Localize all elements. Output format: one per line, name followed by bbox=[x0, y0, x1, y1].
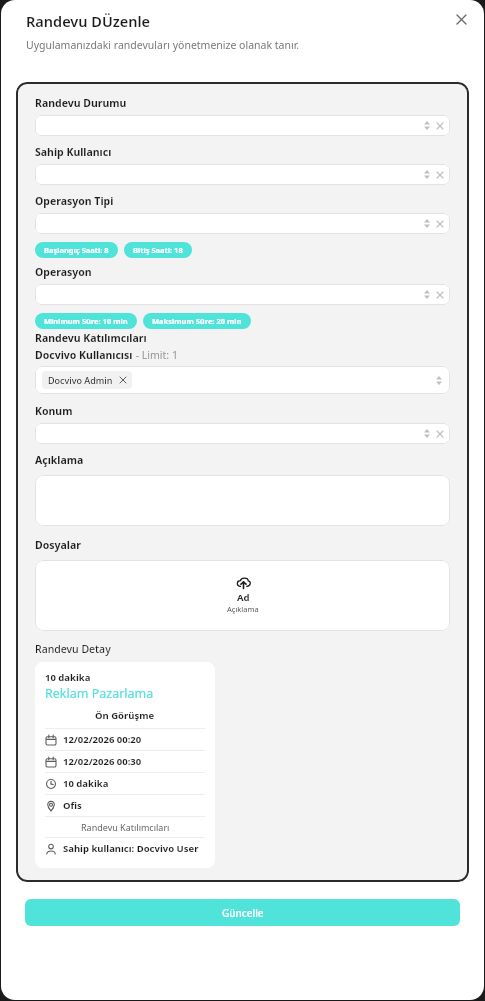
staticText: Docvivo Admin bbox=[48, 374, 113, 386]
button[interactable] bbox=[35, 115, 450, 136]
button[interactable]: Dosya yükle bbox=[35, 560, 450, 631]
staticText: Uygulamanızdaki randevuları yönetmenize … bbox=[26, 38, 300, 52]
staticText: Bitiş Saati: 18 bbox=[133, 245, 183, 255]
staticText: 10 dakika bbox=[63, 777, 109, 790]
staticText: Randevu Detay bbox=[35, 642, 111, 656]
staticText: 10 dakika bbox=[45, 671, 91, 684]
staticText: Operasyon bbox=[35, 265, 92, 279]
button[interactable]: Maksimum Süre: 20 min bbox=[143, 313, 251, 329]
staticText: Konum bbox=[35, 404, 73, 418]
staticText: Sahip Kullanıcı bbox=[35, 145, 112, 159]
button[interactable]: Bitiş Saati: 18 bbox=[124, 242, 192, 258]
staticText: Randevu Katılımcıları bbox=[81, 821, 170, 833]
button[interactable]: Sahip kullanıcı: Docvivo User bbox=[45, 838, 205, 859]
staticText: Güncelle bbox=[222, 906, 264, 920]
button[interactable]: 10 dakika bbox=[45, 773, 205, 794]
button[interactable] bbox=[35, 475, 450, 526]
staticText: Operasyon Tipi bbox=[35, 194, 114, 208]
button[interactable]: Kapat bbox=[450, 8, 472, 30]
staticText: Reklam Pazarlama bbox=[45, 685, 154, 702]
staticText: 12/02/2026 00:30 bbox=[63, 755, 142, 768]
button[interactable]: Güncelle bbox=[25, 899, 460, 926]
staticText: Ön Görüşme bbox=[95, 709, 155, 722]
staticText: Ad bbox=[237, 591, 250, 604]
staticText: Dosyalar bbox=[35, 538, 81, 552]
button[interactable]: Ofis bbox=[45, 795, 205, 816]
staticText: Maksimum Süre: 20 min bbox=[152, 316, 242, 326]
staticText: Randevu Durumu bbox=[35, 96, 127, 110]
button[interactable] bbox=[35, 164, 450, 185]
staticText: Açıklama bbox=[35, 453, 84, 467]
staticText: Açıklama bbox=[227, 604, 259, 614]
button[interactable]: Başlangıç Saati: 8 bbox=[35, 242, 118, 258]
staticText: Minimum Süre: 10 min bbox=[44, 316, 128, 326]
staticText: Randevu DÜzenle bbox=[26, 11, 151, 31]
button[interactable]: Docvivo Admin bbox=[35, 366, 450, 394]
button[interactable]: Minimum Süre: 10 min bbox=[35, 313, 137, 329]
button[interactable] bbox=[35, 284, 450, 305]
staticText: Başlangıç Saati: 8 bbox=[44, 245, 109, 255]
button[interactable]: Docvivo Admin bbox=[42, 371, 132, 389]
staticText: Docvivo Kullanıcısı bbox=[35, 348, 133, 362]
staticText: 12/02/2026 00:20 bbox=[63, 733, 142, 746]
staticText: Ofis bbox=[63, 799, 82, 812]
staticText: - Limit: 1 bbox=[133, 348, 178, 362]
button[interactable]: 12/02/2026 00:20 bbox=[45, 729, 205, 750]
staticText: Randevu Katılımcıları bbox=[35, 331, 147, 345]
button[interactable] bbox=[35, 423, 450, 444]
button[interactable] bbox=[35, 213, 450, 234]
button[interactable]: 12/02/2026 00:30 bbox=[45, 751, 205, 772]
staticText: Sahip kullanıcı: Docvivo User bbox=[63, 842, 199, 855]
